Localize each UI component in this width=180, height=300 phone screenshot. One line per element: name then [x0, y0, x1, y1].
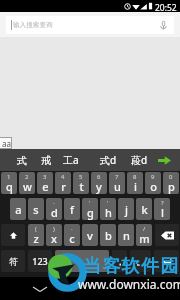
button[interactable]: Shift [1, 224, 25, 246]
button[interactable]: 3 [37, 172, 53, 194]
staticText: 戒 [41, 154, 51, 167]
button[interactable]: 7 [109, 172, 125, 194]
button[interactable]: ? [154, 198, 170, 220]
staticText: d [51, 205, 58, 220]
staticText: r [61, 179, 66, 194]
staticText: l [161, 205, 164, 220]
staticText: f [70, 202, 74, 217]
staticText: 7 [115, 173, 119, 181]
button[interactable]: f [64, 198, 80, 220]
button[interactable]: / [136, 224, 152, 246]
staticText: 3 [43, 173, 47, 181]
button[interactable]: Voice search [156, 18, 170, 32]
button[interactable]: 戒 [33, 149, 58, 171]
staticText: 4 [61, 173, 65, 181]
staticText: 输入搜索查询 [13, 21, 53, 29]
staticText: ' [107, 199, 109, 207]
button[interactable]: 符 [1, 250, 25, 272]
button[interactable]: a [10, 198, 26, 220]
staticText: o [150, 179, 157, 194]
staticText: ) [53, 225, 55, 233]
staticText: 符 [9, 256, 18, 267]
staticText: n [123, 228, 130, 243]
button[interactable]: 8 [127, 172, 143, 194]
button[interactable]: Hide keyboard [25, 280, 55, 297]
staticText: ， [115, 255, 125, 268]
button[interactable]: s [28, 198, 44, 220]
staticText: g [87, 205, 94, 220]
button[interactable]: n [118, 224, 134, 246]
staticText: a [15, 202, 22, 217]
staticText: 9 [151, 173, 155, 181]
staticText: 当客软件园 [83, 255, 180, 278]
button[interactable]: b [100, 224, 116, 246]
staticText: 123 [32, 255, 48, 267]
staticText: ( [35, 225, 37, 233]
staticText: i [134, 179, 137, 194]
staticText: e [42, 179, 49, 194]
staticText: · [53, 199, 55, 207]
staticText: · [71, 225, 73, 233]
button[interactable]: 9 [145, 172, 161, 194]
button[interactable]: 1 [1, 172, 17, 194]
button[interactable]: ( [28, 224, 44, 246]
button[interactable]: ' [82, 198, 98, 220]
button[interactable]: More candidates [150, 149, 178, 171]
button[interactable]: ) [46, 224, 62, 246]
staticText: 6 [97, 173, 101, 181]
button[interactable]: Enter [154, 250, 179, 272]
button[interactable]: · [64, 224, 80, 246]
staticText: 式 [17, 154, 27, 167]
staticText: z [33, 231, 39, 246]
staticText: m [139, 231, 150, 246]
button[interactable]: Backspace [155, 224, 179, 246]
staticText: q [6, 179, 13, 194]
button[interactable]: · [46, 198, 62, 220]
staticText: s [33, 202, 39, 217]
button[interactable]: 式d [95, 149, 122, 171]
button[interactable]: 6 [91, 172, 107, 194]
button[interactable]: k [136, 198, 152, 220]
staticText: 20:52 [155, 2, 177, 14]
staticText: k [141, 202, 148, 217]
button[interactable]: Space [55, 250, 109, 272]
staticText: ' [89, 199, 91, 207]
staticText: b [105, 228, 112, 243]
staticText: y [96, 179, 102, 194]
button[interactable]: 工a [58, 149, 83, 171]
staticText: c [69, 231, 75, 246]
staticText: 2 [25, 173, 29, 181]
button[interactable]: 。 [130, 250, 151, 272]
button[interactable]: v [82, 224, 98, 246]
button[interactable]: 5 [73, 172, 89, 194]
button[interactable]: 0 [163, 172, 179, 194]
staticText: 8 [133, 173, 137, 181]
staticText: h [105, 205, 112, 220]
staticText: 葮d [131, 153, 148, 167]
button[interactable]: 4 [55, 172, 71, 194]
staticText: 工a [63, 153, 79, 167]
staticText: 5 [79, 173, 83, 181]
staticText: aa [2, 138, 11, 149]
staticText: 。 [136, 255, 146, 268]
staticText: 1 [7, 173, 11, 181]
button[interactable]: j [118, 198, 134, 220]
button[interactable]: 2 [19, 172, 35, 194]
staticText: t [79, 179, 84, 194]
staticText: 式d [100, 153, 117, 167]
staticText: www.downxia.com [78, 276, 180, 292]
button[interactable]: 输入搜索查询 [6, 16, 174, 34]
staticText: x [51, 231, 57, 246]
button[interactable]: 123 [28, 250, 52, 272]
button[interactable]: ' [100, 198, 116, 220]
button[interactable]: 式 [9, 149, 34, 171]
staticText: ? [161, 199, 164, 207]
staticText: p [168, 179, 175, 194]
staticText: j [125, 202, 128, 217]
button[interactable]: ， [112, 250, 127, 272]
staticText: / [143, 225, 146, 233]
staticText: u [114, 179, 121, 194]
staticText: v [87, 228, 93, 243]
button[interactable]: 葮d [126, 149, 153, 171]
staticText: w [23, 179, 32, 194]
